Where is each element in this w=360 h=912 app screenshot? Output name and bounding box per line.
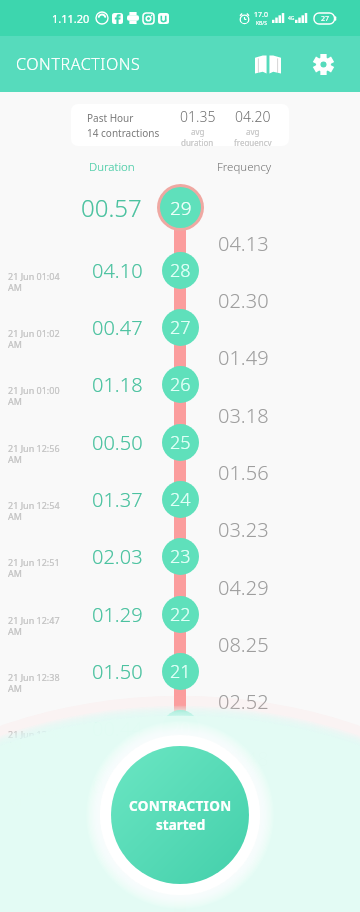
staticText: 01.29 — [92, 601, 143, 628]
staticText: 02.30 — [218, 287, 269, 314]
staticText: 21 — [170, 659, 191, 684]
staticText: CONTRACTIONS — [16, 53, 141, 75]
staticText: 04.10 — [92, 257, 143, 284]
staticText: 25 — [170, 430, 191, 455]
staticText: 21 Jun 01:02 AM — [8, 327, 66, 350]
staticText: 02.52 — [218, 688, 269, 715]
button[interactable]: 03.23 — [0, 528, 360, 585]
staticText: 03.23 — [218, 516, 269, 543]
button[interactable]: Past Hour — [71, 104, 289, 146]
button[interactable]: Settings — [301, 42, 345, 86]
button[interactable]: 02.30 — [0, 299, 360, 356]
button[interactable]: 03.18 — [0, 414, 360, 471]
staticText: KB/S — [256, 20, 267, 27]
staticText: 01.50 — [92, 658, 143, 685]
staticText: 01.56 — [218, 459, 269, 486]
button[interactable]: 03.48 — [0, 757, 360, 814]
staticText: 21 Jun 12:47 AM — [8, 614, 66, 637]
staticText: frequency — [234, 137, 272, 146]
staticText: duration — [181, 137, 214, 146]
staticText: 21 Jun 12:56 AM — [8, 442, 66, 465]
staticText: 04.29 — [218, 574, 269, 601]
staticText: 26 — [170, 372, 191, 397]
staticText: 00.44 — [92, 715, 143, 742]
staticText: 01.35 — [180, 107, 216, 126]
staticText: 21 Jun 01:00 AM — [8, 384, 66, 407]
staticText: 04.13 — [218, 230, 269, 257]
button[interactable]: Guide — [246, 42, 290, 86]
button[interactable]: 04.29 — [0, 586, 360, 643]
button[interactable]: 00.57 — [0, 179, 360, 236]
staticText: Frequency — [217, 159, 272, 175]
staticText: 00.39 — [92, 772, 143, 799]
staticText: Past Hour — [87, 111, 134, 125]
staticText: 03.48 — [218, 745, 269, 772]
staticText: 22 — [170, 602, 191, 627]
button[interactable]: 08.25 — [0, 643, 360, 700]
staticText: avg — [191, 126, 205, 137]
button[interactable]: 01.56 — [0, 471, 360, 528]
staticText: CONTRACTION — [129, 797, 232, 815]
staticText: 1.11.20 — [52, 11, 90, 26]
staticText: 27 — [170, 315, 191, 340]
staticText: 00.47 — [92, 314, 143, 341]
staticText: 21 Jun 12:54 AM — [8, 499, 66, 522]
button[interactable]: CONTRACTION — [111, 746, 249, 884]
staticText: 23 — [170, 544, 191, 569]
button[interactable]: 02.52 — [0, 700, 360, 757]
staticText: 29 — [170, 195, 192, 221]
staticText: started — [156, 816, 206, 834]
staticText: 03.18 — [218, 402, 269, 429]
staticText: 08.25 — [218, 631, 269, 658]
staticText: 21 Jun 01:04 AM — [8, 270, 66, 293]
staticText: 01.18 — [92, 371, 143, 398]
staticText: 20 — [170, 716, 191, 741]
staticText: 14 contractions — [87, 126, 160, 140]
staticText: 21 Jun 12:51 AM — [8, 556, 66, 579]
staticText: 00.57 — [81, 191, 142, 224]
staticText: 4G — [288, 15, 295, 22]
staticText: 04.20 — [235, 107, 271, 126]
staticText: 27 — [321, 14, 330, 24]
staticText: 24 — [170, 487, 191, 512]
staticText: 01.49 — [218, 344, 269, 371]
staticText: avg — [246, 126, 260, 137]
button[interactable]: 01.49 — [0, 356, 360, 413]
staticText: 21 Jun 12:36 AM — [8, 728, 66, 751]
button[interactable]: 04.13 — [0, 242, 360, 299]
staticText: 01.37 — [92, 486, 143, 513]
staticText: 17.0 — [254, 10, 268, 20]
staticText: Duration — [89, 159, 135, 175]
staticText: 00.50 — [92, 429, 143, 456]
staticText: 21 Jun 12:38 AM — [8, 671, 66, 694]
staticText: 02.03 — [92, 543, 143, 570]
staticText: 28 — [170, 258, 191, 283]
